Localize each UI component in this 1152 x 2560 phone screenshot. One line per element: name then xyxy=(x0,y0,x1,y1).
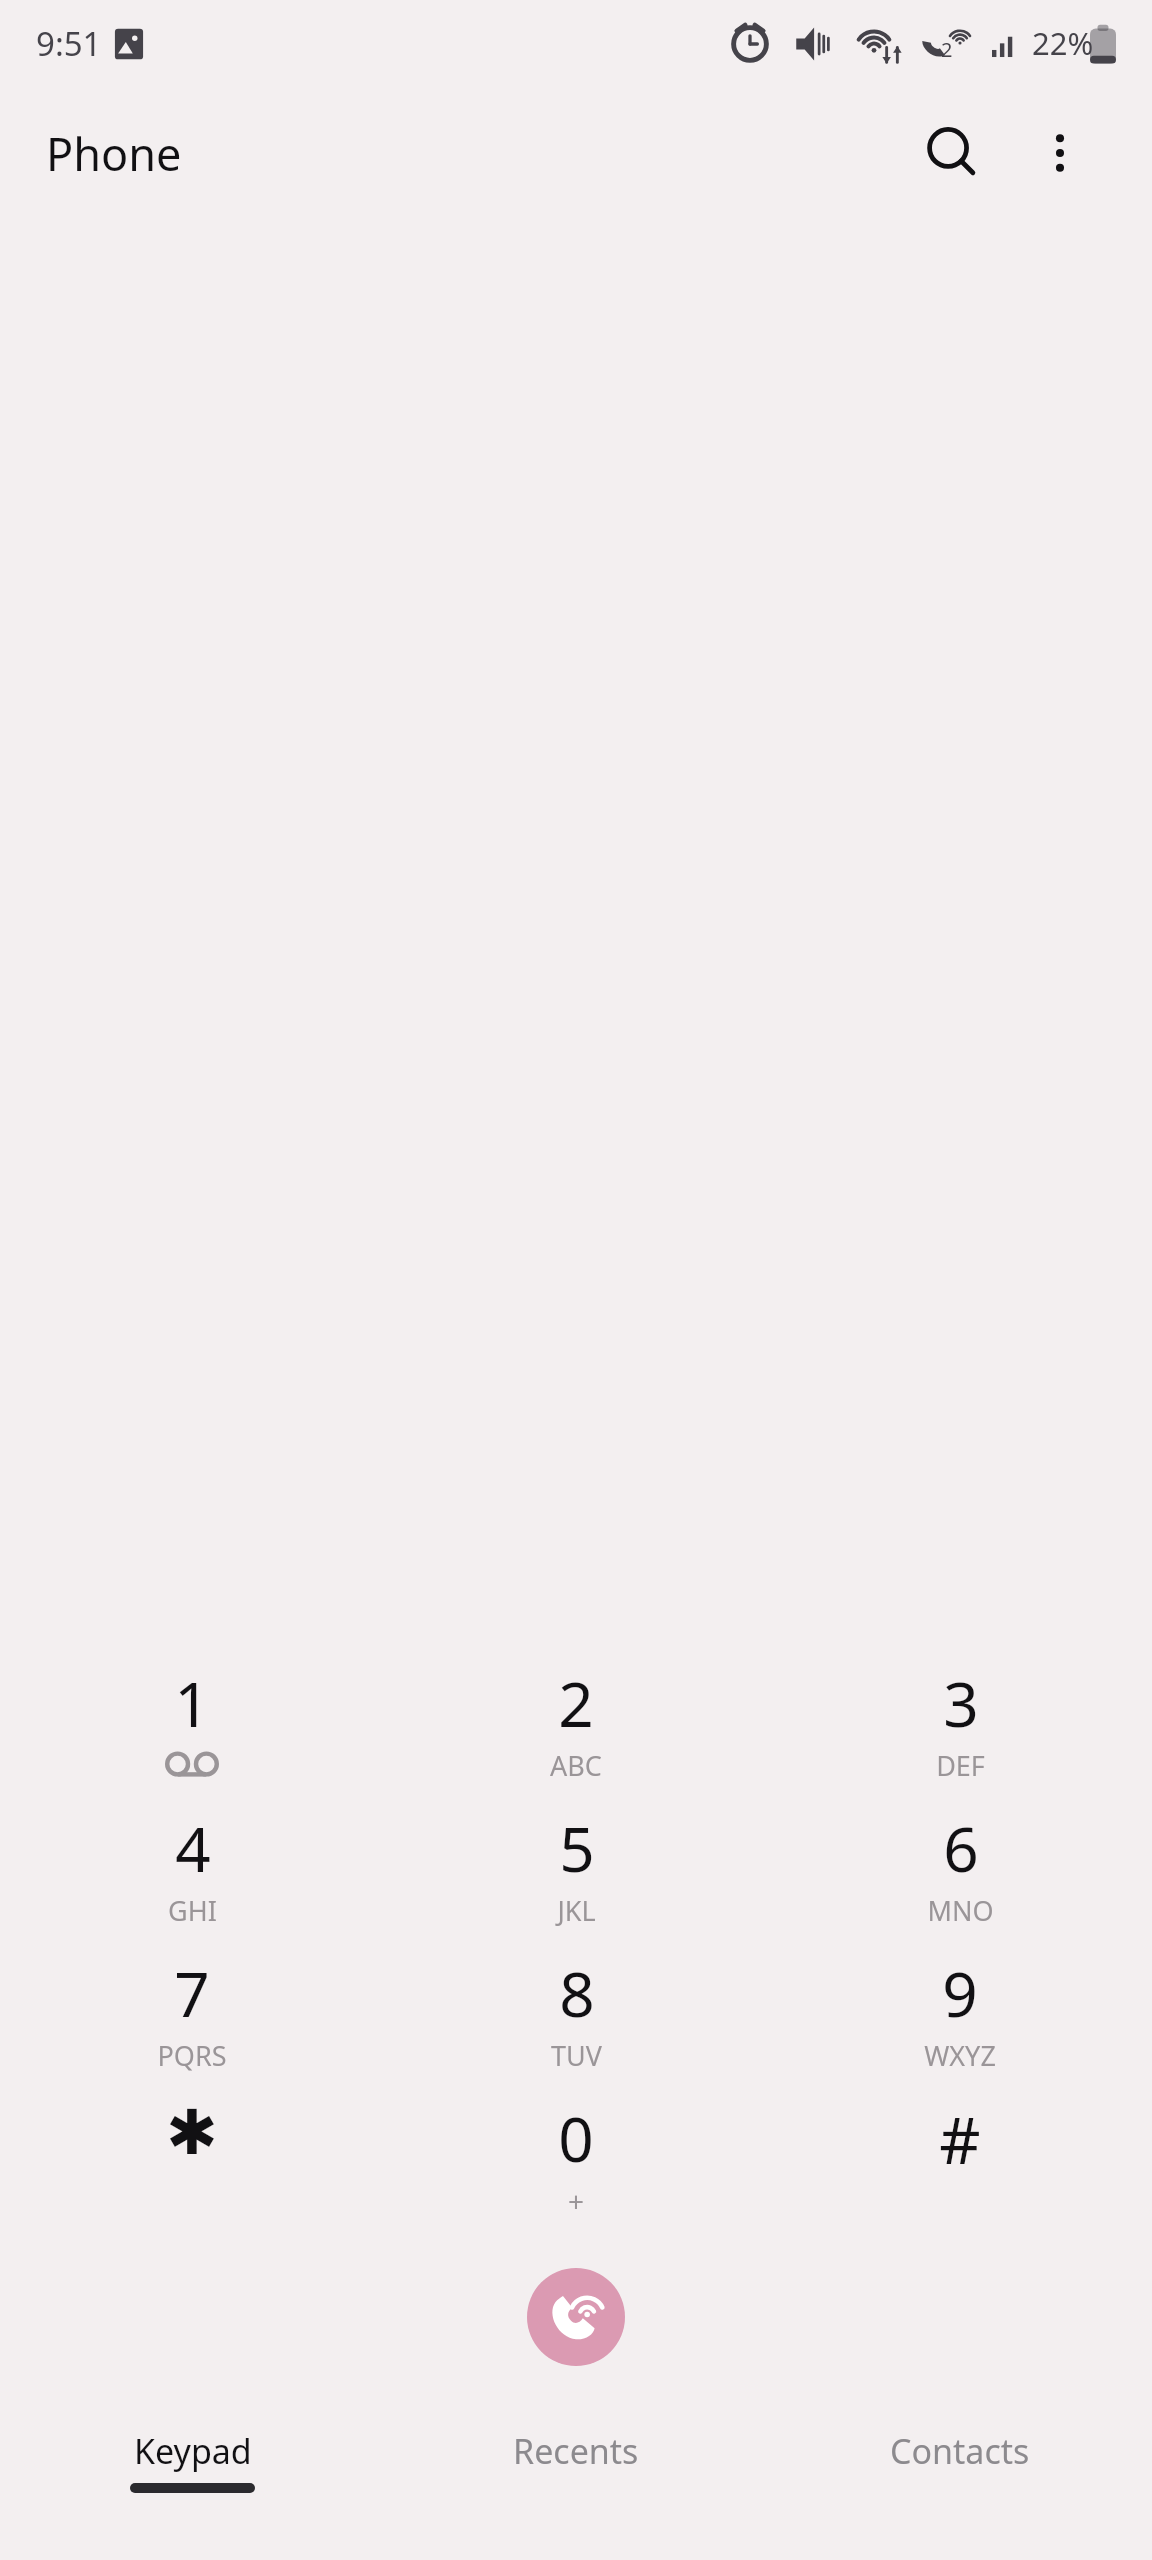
staticText: 3 xyxy=(943,1661,979,1745)
button[interactable]: Contacts xyxy=(768,2406,1152,2536)
button[interactable]: # xyxy=(768,2096,1152,2246)
staticText: 7 xyxy=(174,1951,210,2035)
button[interactable]: 2 xyxy=(384,1661,768,1806)
staticText: Phone xyxy=(46,123,182,184)
staticText: ABC xyxy=(550,1747,602,1784)
button[interactable]: Recents xyxy=(384,2406,768,2536)
staticText: 2 xyxy=(558,1661,594,1745)
button[interactable]: Keypad xyxy=(0,2406,384,2536)
staticText: 9 xyxy=(942,1951,978,2035)
button[interactable]: More options xyxy=(1012,105,1108,201)
staticText: DEF xyxy=(936,1747,985,1784)
staticText: 4 xyxy=(175,1806,211,1890)
button[interactable]: 9 xyxy=(768,1951,1152,2096)
staticText: 1 xyxy=(174,1661,210,1745)
staticText: ✱ xyxy=(166,2096,218,2168)
button[interactable]: 4 xyxy=(0,1806,384,1951)
staticText: 5 xyxy=(559,1806,595,1890)
staticText: 6 xyxy=(943,1806,979,1890)
button[interactable]: 3 xyxy=(768,1661,1152,1806)
staticText: + xyxy=(568,2182,585,2220)
staticText: TUV xyxy=(551,2037,602,2074)
staticText: 8 xyxy=(559,1951,595,2035)
button[interactable]: 5 xyxy=(384,1806,768,1951)
staticText: MNO xyxy=(927,1892,994,1929)
staticText: PQRS xyxy=(157,2037,227,2074)
staticText: 22% xyxy=(1032,22,1094,64)
button[interactable]: 8 xyxy=(384,1951,768,2096)
button[interactable]: 6 xyxy=(768,1806,1152,1951)
button[interactable]: Call xyxy=(527,2268,625,2366)
staticText: 9:51 xyxy=(36,21,102,66)
staticText: # xyxy=(939,2096,981,2183)
staticText: JKL xyxy=(557,1892,596,1929)
button[interactable]: 7 xyxy=(0,1951,384,2096)
button[interactable]: Search xyxy=(904,105,1000,201)
staticText: 2 xyxy=(941,36,953,63)
staticText: GHI xyxy=(168,1892,217,1929)
staticText: Keypad xyxy=(134,2428,252,2474)
button[interactable]: 0 xyxy=(384,2096,768,2246)
staticText: Contacts xyxy=(890,2428,1030,2474)
staticText: 0 xyxy=(558,2096,594,2180)
button[interactable]: 1 xyxy=(0,1661,384,1806)
staticText: WXYZ xyxy=(924,2037,996,2074)
staticText: Recents xyxy=(513,2428,639,2474)
button[interactable]: ✱ xyxy=(0,2096,384,2246)
